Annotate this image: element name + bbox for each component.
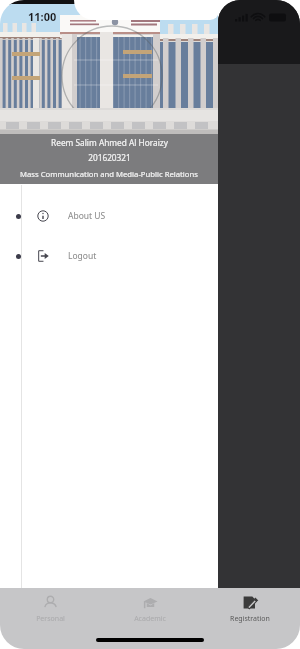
button[interactable]: Logout — [0, 245, 218, 267]
staticText: Personal — [36, 614, 65, 624]
staticText: Reem Salim Ahmed Al Horaizy — [51, 137, 168, 148]
staticText: 11:00 — [28, 9, 57, 24]
staticText: Registration — [230, 614, 270, 624]
button[interactable]: Personal — [0, 588, 100, 649]
button[interactable]: Academic — [100, 588, 200, 649]
staticText: About US — [68, 210, 106, 222]
button[interactable]: Registration — [200, 588, 300, 649]
staticText: Academic — [134, 614, 166, 624]
staticText: Mass Communication and Media-Public Rela… — [20, 169, 198, 179]
button[interactable]: About US — [0, 205, 218, 227]
staticText: 201620321 — [88, 152, 131, 163]
staticText: Logout — [68, 250, 97, 262]
